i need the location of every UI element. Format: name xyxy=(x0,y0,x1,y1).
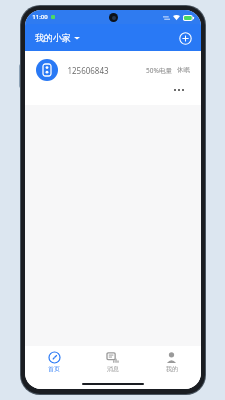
staticText: 消息 xyxy=(107,365,119,373)
staticText: 我的小家 xyxy=(35,32,71,43)
button[interactable]: 我的 xyxy=(142,350,201,375)
staticText: 11:00 xyxy=(32,13,48,21)
button[interactable]: 125606843 xyxy=(25,51,201,105)
button[interactable]: More options xyxy=(169,84,189,96)
staticText: 休眠 xyxy=(177,66,190,74)
staticText: 我的 xyxy=(166,365,178,373)
button[interactable]: 我的小家 xyxy=(33,30,82,45)
staticText: 125606843 xyxy=(67,65,109,76)
button[interactable]: 首页 xyxy=(25,350,83,375)
button[interactable]: 消息 xyxy=(83,350,142,375)
staticText: 50%电量 xyxy=(146,66,172,75)
button[interactable]: Add device xyxy=(176,29,194,47)
staticText: 首页 xyxy=(48,365,60,373)
